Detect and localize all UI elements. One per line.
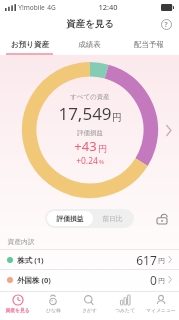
staticText: 円 bbox=[158, 277, 165, 285]
staticText: 成績表 bbox=[78, 40, 101, 49]
button[interactable]: さがす bbox=[71, 292, 107, 320]
staticText: 評価損益 bbox=[77, 129, 103, 137]
button[interactable]: お預り資産 bbox=[0, 33, 59, 55]
staticText: 資産内訳 bbox=[7, 237, 35, 246]
staticText: 円 bbox=[112, 111, 122, 124]
button[interactable]: 成績表 bbox=[59, 33, 119, 55]
staticText: 前日比 bbox=[102, 214, 123, 223]
staticText: お預り資産 bbox=[11, 40, 49, 49]
staticText: つみたて bbox=[115, 307, 135, 313]
button[interactable]: 株式 (1) bbox=[0, 250, 179, 269]
button[interactable]: Next bbox=[160, 122, 176, 138]
button[interactable]: 配当予報 bbox=[119, 33, 179, 55]
staticText: 資産を見る bbox=[66, 18, 114, 30]
staticText: % bbox=[99, 158, 104, 166]
staticText: 株式 (1) bbox=[17, 255, 44, 265]
staticText: +43 bbox=[74, 137, 97, 155]
button[interactable]: Toggle visibility lock bbox=[153, 209, 171, 227]
button[interactable]: ひな株 bbox=[35, 292, 71, 320]
button[interactable]: 前日比 bbox=[93, 211, 132, 226]
staticText: 0 bbox=[150, 272, 157, 288]
button[interactable]: 外国株 (0) bbox=[0, 270, 179, 289]
staticText: ? bbox=[164, 20, 168, 29]
staticText: Y!mobile bbox=[18, 3, 45, 12]
staticText: 外国株 (0) bbox=[17, 275, 51, 285]
staticText: 12:40 bbox=[98, 2, 118, 12]
button[interactable]: 資産を見る bbox=[0, 292, 35, 320]
button[interactable]: すべての資産 bbox=[19, 59, 161, 201]
staticText: すべての資産 bbox=[70, 93, 110, 101]
button[interactable]: Help bbox=[158, 16, 174, 32]
button[interactable]: マイメニュー bbox=[143, 292, 179, 320]
staticText: 配当予報 bbox=[134, 40, 164, 49]
staticText: 円 bbox=[158, 257, 165, 265]
staticText: 617 bbox=[136, 252, 157, 268]
staticText: ひな株 bbox=[46, 307, 61, 313]
staticText: 評価損益 bbox=[56, 214, 84, 223]
button[interactable]: つみたて bbox=[107, 292, 143, 320]
staticText: 資産を見る bbox=[5, 307, 30, 313]
staticText: +0.24 bbox=[76, 155, 98, 167]
button[interactable]: 評価損益 bbox=[47, 211, 93, 226]
staticText: 4G bbox=[47, 3, 56, 12]
staticText: マイメニュー bbox=[146, 307, 176, 313]
staticText: 17,549 bbox=[58, 102, 112, 125]
staticText: さがす bbox=[82, 307, 97, 313]
staticText: 円 bbox=[98, 143, 107, 154]
